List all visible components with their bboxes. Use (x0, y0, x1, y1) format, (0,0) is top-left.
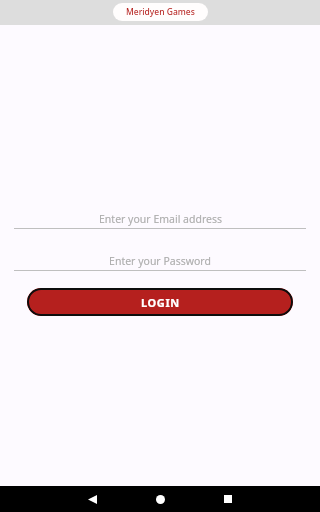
button[interactable]: LOGIN (27, 288, 293, 316)
staticText: Meridyen Games (126, 6, 195, 18)
button[interactable]: Enter your Email address (14, 211, 306, 229)
staticText: Enter your Email address (99, 212, 222, 226)
button[interactable]: Meridyen Games (113, 3, 208, 21)
staticText: LOGIN (141, 295, 180, 310)
button[interactable]: Recent apps (218, 489, 238, 509)
button[interactable]: Home (150, 489, 170, 509)
button[interactable]: Back (82, 489, 102, 509)
button[interactable]: Enter your Password (14, 253, 306, 271)
staticText: Enter your Password (109, 254, 211, 268)
